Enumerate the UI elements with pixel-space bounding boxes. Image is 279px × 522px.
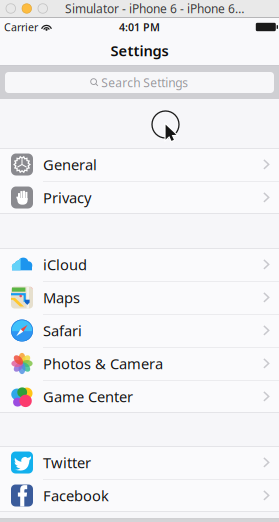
staticText: Twitter xyxy=(43,453,91,472)
staticText: Safari xyxy=(43,321,82,340)
staticText: Settings xyxy=(110,41,168,60)
button[interactable]: Maps xyxy=(0,281,279,314)
button[interactable]: Game Center xyxy=(0,380,279,413)
staticText: iCloud xyxy=(43,255,87,274)
button[interactable]: Privacy xyxy=(0,181,279,214)
staticText: 4:01 PM xyxy=(119,20,160,34)
button[interactable]: Twitter xyxy=(0,446,279,479)
button[interactable]: General xyxy=(0,148,279,181)
staticText: Carrier xyxy=(4,20,38,34)
staticText: Simulator - iPhone 6 - iPhone 6… xyxy=(65,0,244,16)
staticText: Facebook xyxy=(43,486,109,505)
staticText: Maps xyxy=(43,288,80,307)
button[interactable]: Safari xyxy=(0,314,279,347)
staticText: Privacy xyxy=(43,188,91,207)
button[interactable]: Facebook xyxy=(0,479,279,512)
staticText: General xyxy=(43,155,97,174)
staticText: Search Settings xyxy=(101,74,188,90)
staticText: Photos & Camera xyxy=(43,354,163,373)
button[interactable]: iCloud xyxy=(0,248,279,281)
staticText: Game Center xyxy=(43,387,133,406)
button[interactable]: Photos & Camera xyxy=(0,347,279,380)
